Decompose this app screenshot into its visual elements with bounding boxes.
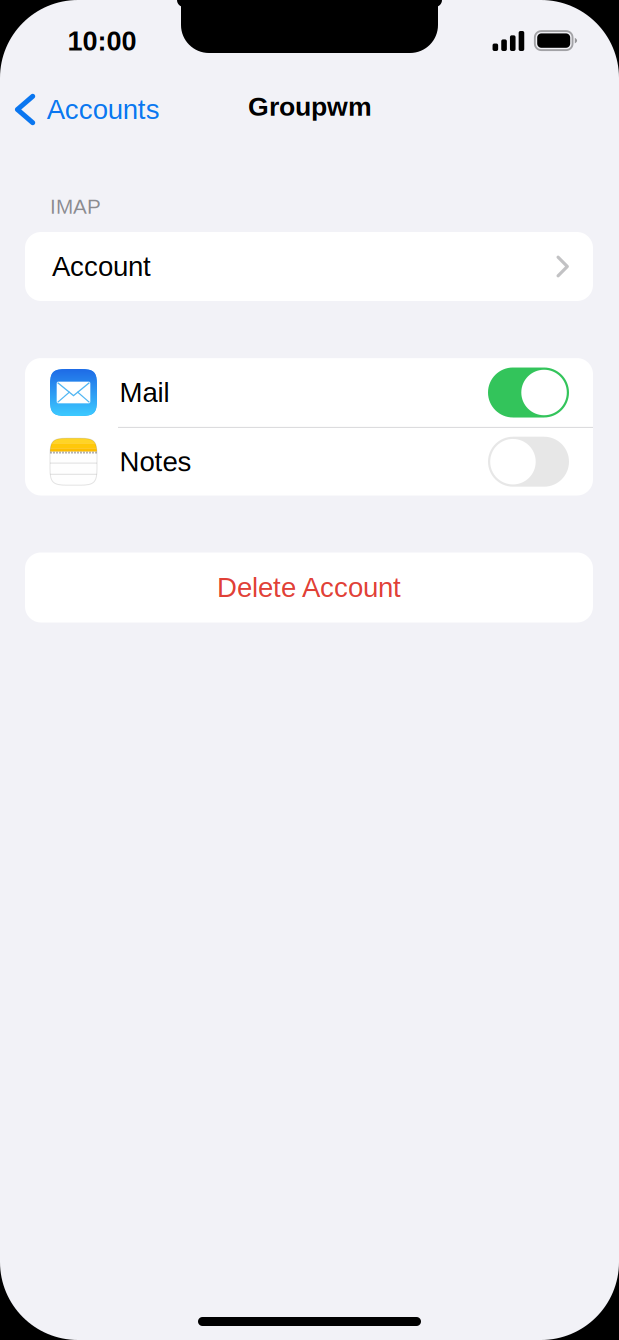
staticText: Delete Account: [217, 572, 401, 603]
staticText: Accounts: [47, 94, 160, 125]
button[interactable]: Mail: [25, 358, 593, 427]
button[interactable]: Notes: [25, 428, 593, 495]
staticText: Account: [52, 251, 151, 282]
button[interactable]: Delete Account: [25, 552, 593, 622]
staticText: 10:00: [67, 26, 136, 56]
staticText: Groupwm: [248, 92, 372, 121]
staticText: Notes: [119, 446, 191, 477]
staticText: IMAP: [50, 195, 101, 218]
staticText: Mail: [119, 377, 169, 408]
button[interactable]: Accounts: [0, 78, 190, 140]
button[interactable]: Account: [25, 232, 593, 301]
